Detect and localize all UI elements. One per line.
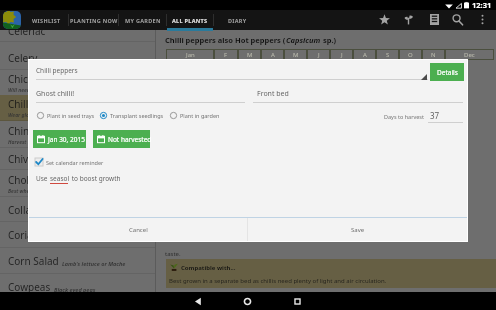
button[interactable]: Choko (0, 170, 155, 197)
button[interactable]: Celeriac (0, 20, 155, 42)
staticText: Capsicum (286, 35, 321, 45)
button[interactable]: Transplant seedlings (98, 110, 166, 121)
staticText: Front bed (257, 89, 289, 99)
staticText: seasol (50, 174, 70, 183)
button[interactable]: Details (430, 63, 464, 81)
button[interactable]: PLANTING NOW (69, 10, 118, 30)
button[interactable]: Recent apps (286, 292, 308, 310)
button[interactable]: Jan (166, 49, 214, 60)
staticText: S (386, 51, 390, 59)
staticText: Compatible with... (181, 264, 236, 272)
button[interactable]: N (422, 49, 445, 60)
staticText: Best when cooked (8, 188, 51, 195)
button[interactable]: J (330, 49, 353, 60)
staticText: Black eyed peas (54, 286, 96, 293)
button[interactable] (249, 85, 464, 105)
button[interactable]: A (261, 49, 284, 60)
staticText: A (271, 51, 275, 59)
staticText: Chicory (8, 72, 44, 86)
staticText: J (341, 51, 343, 59)
staticText: Lamb's lettuce or Mache (62, 260, 126, 267)
staticText: Coriander (8, 228, 55, 242)
button[interactable]: Favourites (373, 10, 396, 29)
button[interactable]: WISHLIST (24, 10, 68, 30)
button[interactable]: Coriander (0, 222, 155, 248)
button[interactable]: J (307, 49, 330, 60)
button[interactable]: Chicory (0, 70, 155, 96)
button[interactable]: Plant in seed trays (35, 110, 97, 121)
button[interactable]: Jan 30, 2015 (33, 130, 86, 148)
button[interactable]: Collards (0, 197, 155, 222)
staticText: Ghost chilli! (36, 89, 75, 99)
staticText: Wear gloves when handling (8, 112, 73, 119)
staticText: Details (437, 68, 458, 77)
button[interactable]: Not harvested (93, 130, 150, 148)
button[interactable]: Set calendar reminder (33, 156, 106, 168)
staticText: Chinese cabbage (8, 124, 89, 138)
button[interactable]: S (376, 49, 399, 60)
button[interactable] (29, 85, 245, 105)
staticText: Collards (8, 203, 47, 217)
button[interactable]: Chives (0, 148, 155, 170)
staticText: O (408, 51, 413, 59)
staticText: Chives (8, 152, 39, 166)
button[interactable]: App home (3, 11, 21, 29)
staticText: Days to harvest (384, 113, 424, 120)
staticText: 12:31 (472, 0, 492, 10)
button[interactable]: Chinese cabbage (0, 121, 155, 148)
button[interactable]: More options (472, 10, 492, 29)
staticText: N (431, 51, 436, 59)
button[interactable]: DIARY (214, 10, 260, 30)
staticText: Jan (186, 51, 195, 59)
button[interactable] (29, 60, 429, 82)
button[interactable]: O (399, 49, 422, 60)
button[interactable]: Cowpeas (0, 274, 155, 300)
button[interactable]: Celery (0, 46, 155, 70)
button[interactable]: Plant in garden (168, 110, 222, 121)
staticText: Dec (464, 51, 475, 59)
staticText: M (293, 51, 299, 59)
staticText: Will need a long growing season (8, 87, 85, 94)
staticText: Cancel (129, 226, 148, 234)
staticText: WISHLIST (32, 17, 61, 24)
staticText: Chilli peppers (36, 66, 78, 75)
staticText: Chilli peppers (8, 97, 73, 111)
button[interactable]: Search (446, 10, 469, 29)
staticText: Celery (8, 51, 38, 65)
staticText: Corn Salad (8, 254, 59, 268)
button[interactable]: Diary (423, 10, 446, 29)
staticText: MY GARDEN (125, 17, 161, 24)
button[interactable]: Dec (445, 49, 494, 60)
button[interactable]: MY GARDEN (119, 10, 166, 30)
staticText: Celeriac (8, 24, 46, 38)
staticText: M (247, 51, 253, 59)
button[interactable]: Home (236, 292, 258, 310)
staticText: Save (351, 226, 365, 234)
button[interactable]: A (353, 49, 376, 60)
staticText: J (318, 51, 320, 59)
staticText: Chilli peppers also Hot peppers ( (165, 35, 286, 45)
button[interactable]: M (238, 49, 261, 60)
button[interactable]: Chilli peppers (0, 95, 155, 121)
staticText: to boost growth (70, 174, 121, 183)
button[interactable]: F (214, 49, 238, 60)
button[interactable]: Planting now (397, 10, 420, 29)
staticText: Plant in seed trays (47, 112, 95, 119)
staticText: PLANTING NOW (70, 17, 118, 24)
staticText: ALL PLANTS (172, 17, 208, 24)
button[interactable]: Corn Salad (0, 248, 155, 274)
button[interactable]: Compatible with... (170, 263, 236, 272)
button[interactable]: Save (248, 218, 467, 241)
button[interactable]: Cancel (29, 218, 247, 241)
staticText: Transplant seedlings (110, 112, 164, 119)
staticText: A (363, 51, 367, 59)
button[interactable]: M (284, 49, 307, 60)
staticText: Harvest before the weather (8, 139, 74, 146)
button[interactable]: Back (187, 292, 209, 310)
staticText: DIARY (228, 17, 247, 24)
staticText: Use (36, 174, 50, 183)
staticText: Choko (8, 173, 38, 187)
staticText: Jan 30, 2015 (48, 135, 85, 144)
staticText: sp.) (321, 35, 337, 45)
button[interactable]: ALL PLANTS (167, 10, 213, 30)
